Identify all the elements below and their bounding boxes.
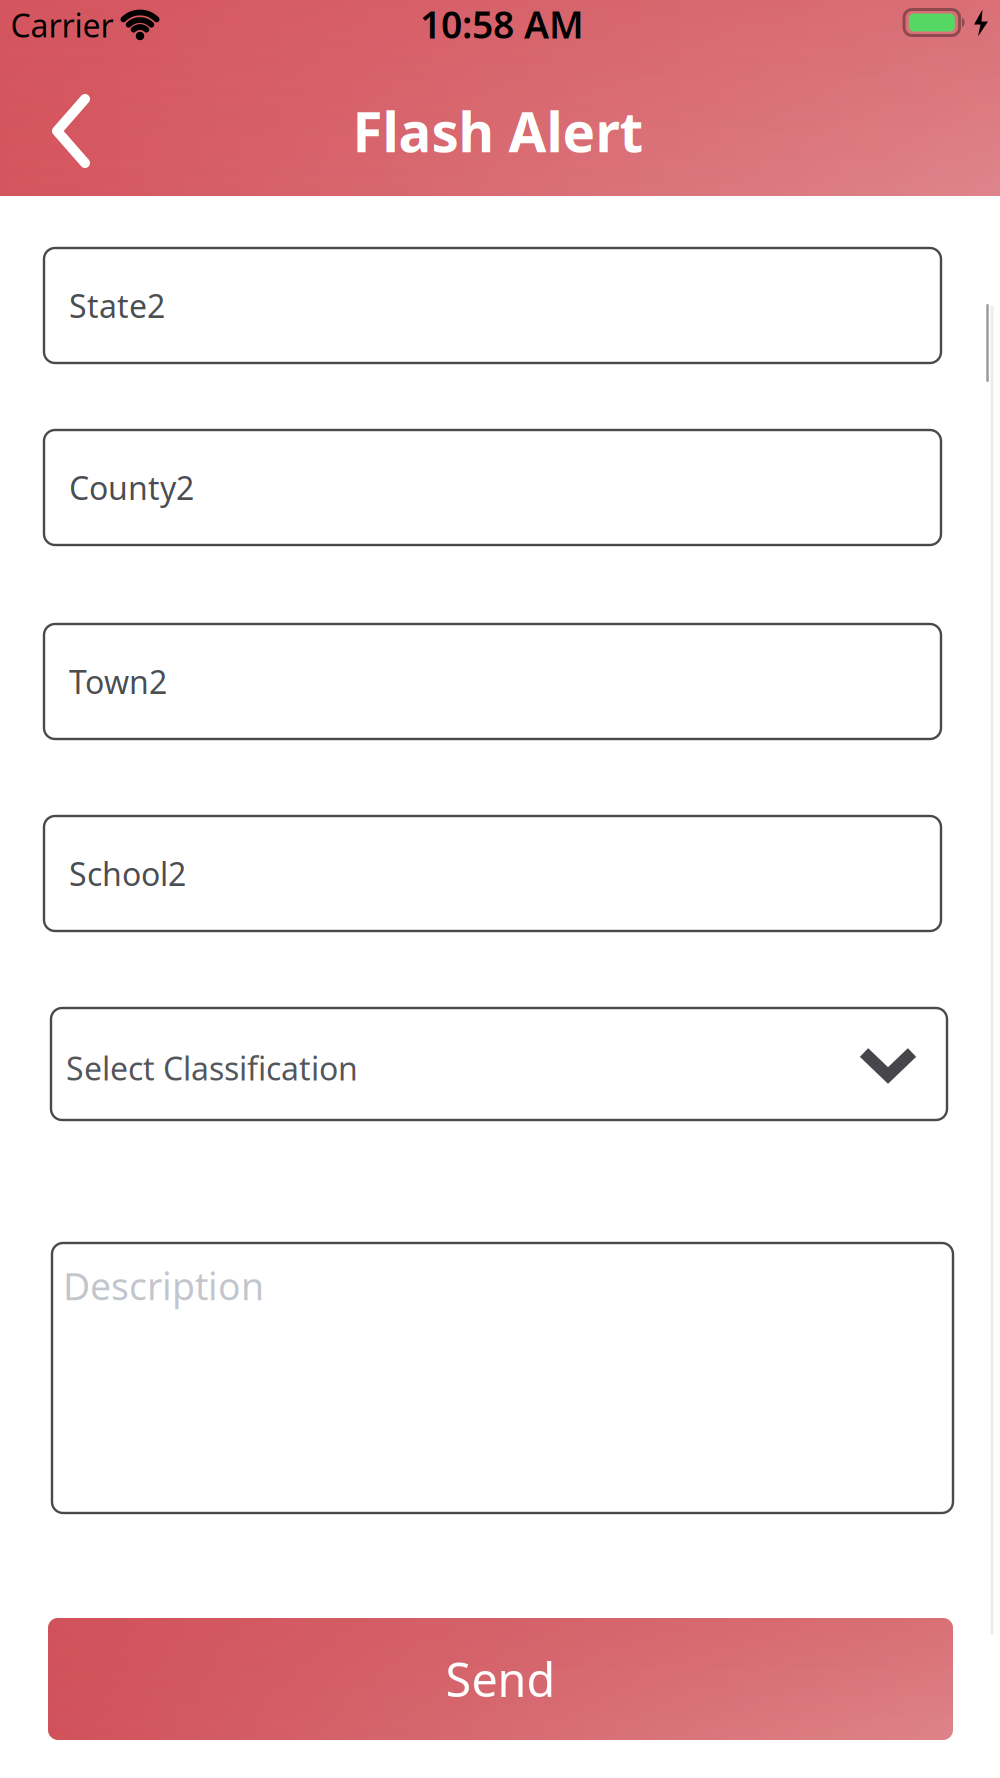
- staticText: Town2: [69, 660, 167, 703]
- staticText: School2: [69, 852, 186, 895]
- textField[interactable]: Town2: [69, 660, 941, 703]
- staticText: County2: [69, 466, 194, 509]
- staticText: Select Classification: [66, 1047, 358, 1089]
- button[interactable]: Back: [51, 92, 93, 170]
- staticText: Carrier: [10, 4, 113, 46]
- staticText: County2: [69, 466, 194, 509]
- staticText: Description: [64, 1263, 265, 1313]
- textField[interactable]: County2: [69, 466, 941, 509]
- staticText: Town2: [69, 660, 167, 703]
- staticText: State2: [69, 284, 165, 327]
- textField[interactable]: State2: [69, 284, 941, 327]
- button[interactable]: Select Classification: [51, 1008, 947, 1120]
- staticText: State2: [69, 284, 165, 327]
- staticText: Flash Alert: [352, 95, 643, 167]
- staticText: 10:58 AM: [420, 0, 584, 49]
- staticText: School2: [69, 852, 186, 895]
- staticText: Description: [63, 1261, 264, 1311]
- textField[interactable]: School2: [69, 852, 941, 895]
- button[interactable]: Send: [48, 1618, 953, 1740]
- staticText: Send: [445, 1648, 555, 1710]
- textField[interactable]: Description: [64, 1263, 953, 1313]
